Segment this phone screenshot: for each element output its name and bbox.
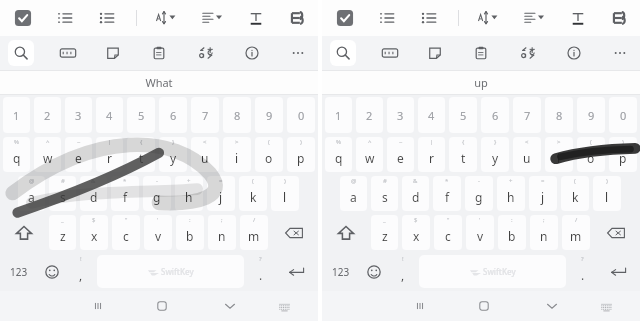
button[interactable]: %	[325, 137, 352, 172]
button[interactable]: ;	[208, 215, 236, 250]
button[interactable]: Recents	[393, 291, 447, 321]
button[interactable]: Enter	[596, 252, 639, 291]
button[interactable]: Bold	[284, 6, 308, 30]
button[interactable]: _	[371, 215, 398, 250]
button[interactable]: 5	[449, 97, 477, 133]
button[interactable]: 8	[223, 97, 251, 133]
button[interactable]: Stickers	[423, 41, 447, 65]
button[interactable]: Select	[332, 5, 358, 31]
button[interactable]: Info	[240, 41, 264, 65]
button[interactable]: 123	[323, 252, 359, 291]
button[interactable]: 8	[545, 97, 573, 133]
button[interactable]: -	[143, 176, 171, 211]
button[interactable]: }	[481, 137, 509, 172]
button[interactable]: Backspace	[270, 213, 317, 252]
button[interactable]: !	[391, 254, 414, 289]
button[interactable]: !	[69, 254, 92, 289]
button[interactable]: ^	[34, 137, 61, 172]
button[interactable]: 1	[325, 97, 352, 133]
button[interactable]: |	[96, 137, 123, 172]
button[interactable]: Numbered list	[374, 5, 400, 31]
button[interactable]: "	[112, 215, 140, 250]
button[interactable]: {	[127, 137, 155, 172]
button[interactable]: >	[223, 137, 251, 172]
button[interactable]: Font size	[152, 3, 182, 33]
button[interactable]: Stickers	[101, 41, 125, 65]
button[interactable]: >	[545, 137, 573, 172]
button[interactable]: ^	[356, 137, 383, 172]
button[interactable]: :	[176, 215, 204, 250]
button[interactable]: What	[0, 71, 318, 94]
button[interactable]: 3	[65, 97, 92, 133]
button[interactable]: &	[80, 176, 107, 211]
button[interactable]: Search	[330, 40, 356, 66]
button[interactable]: Hide keyboard	[520, 291, 583, 321]
button[interactable]: +	[497, 176, 525, 211]
button[interactable]: Info	[562, 41, 586, 65]
button[interactable]: 5	[127, 97, 155, 133]
button[interactable]: |	[418, 137, 445, 172]
button[interactable]: 6	[481, 97, 509, 133]
button[interactable]: GIF	[56, 41, 80, 65]
button[interactable]: /	[240, 215, 268, 250]
button[interactable]: 2	[356, 97, 383, 133]
button[interactable]: )	[287, 137, 315, 172]
button[interactable]: ~	[65, 137, 92, 172]
button[interactable]: 3	[387, 97, 414, 133]
button[interactable]: Home	[447, 291, 520, 321]
button[interactable]: Translate	[193, 40, 219, 66]
button[interactable]: Font size	[474, 3, 504, 33]
button[interactable]: @	[340, 176, 367, 211]
button[interactable]: Alignment	[520, 3, 550, 33]
button[interactable]: Shift	[323, 213, 369, 252]
button[interactable]: ;	[530, 215, 558, 250]
button[interactable]: Space	[419, 255, 566, 288]
button[interactable]: Translate	[515, 40, 541, 66]
button[interactable]: 1	[3, 97, 30, 133]
button[interactable]: <	[191, 137, 219, 172]
button[interactable]: ?	[571, 254, 594, 289]
button[interactable]: #	[371, 176, 398, 211]
button[interactable]: Text color	[244, 6, 268, 30]
button[interactable]: Emoji	[37, 252, 67, 291]
button[interactable]: 6	[159, 97, 187, 133]
button[interactable]: Clipboard	[147, 41, 171, 65]
button[interactable]: Home	[125, 291, 198, 321]
button[interactable]: '	[144, 215, 172, 250]
button[interactable]: Select	[10, 5, 36, 31]
button[interactable]: :	[498, 215, 526, 250]
button[interactable]: $	[402, 215, 430, 250]
button[interactable]: 4	[96, 97, 123, 133]
button[interactable]: *	[433, 176, 461, 211]
button[interactable]: Emoji	[359, 252, 389, 291]
button[interactable]: Space	[97, 255, 244, 288]
button[interactable]: (	[577, 137, 605, 172]
button[interactable]: '	[466, 215, 494, 250]
button[interactable]: 9	[255, 97, 283, 133]
button[interactable]: 7	[513, 97, 541, 133]
button[interactable]: Numbered list	[52, 5, 78, 31]
button[interactable]: $	[80, 215, 108, 250]
button[interactable]: Text color	[566, 6, 590, 30]
button[interactable]: =	[529, 176, 557, 211]
button[interactable]: )	[271, 176, 299, 211]
button[interactable]: 0	[287, 97, 315, 133]
button[interactable]: (	[561, 176, 589, 211]
button[interactable]: 123	[1, 252, 37, 291]
button[interactable]: 0	[609, 97, 637, 133]
button[interactable]: Recents	[71, 291, 125, 321]
button[interactable]: Backspace	[592, 213, 639, 252]
button[interactable]: Bulleted list	[94, 5, 120, 31]
button[interactable]: @	[18, 176, 45, 211]
button[interactable]: (	[239, 176, 267, 211]
button[interactable]: More options	[286, 41, 310, 65]
button[interactable]: Shift	[1, 213, 47, 252]
button[interactable]: 9	[577, 97, 605, 133]
button[interactable]: More options	[608, 41, 632, 65]
button[interactable]: &	[402, 176, 429, 211]
button[interactable]: _	[49, 215, 76, 250]
button[interactable]: ?	[249, 254, 272, 289]
button[interactable]: up	[322, 71, 640, 94]
button[interactable]: Switch keyboard	[583, 291, 629, 321]
button[interactable]: Clipboard	[469, 41, 493, 65]
